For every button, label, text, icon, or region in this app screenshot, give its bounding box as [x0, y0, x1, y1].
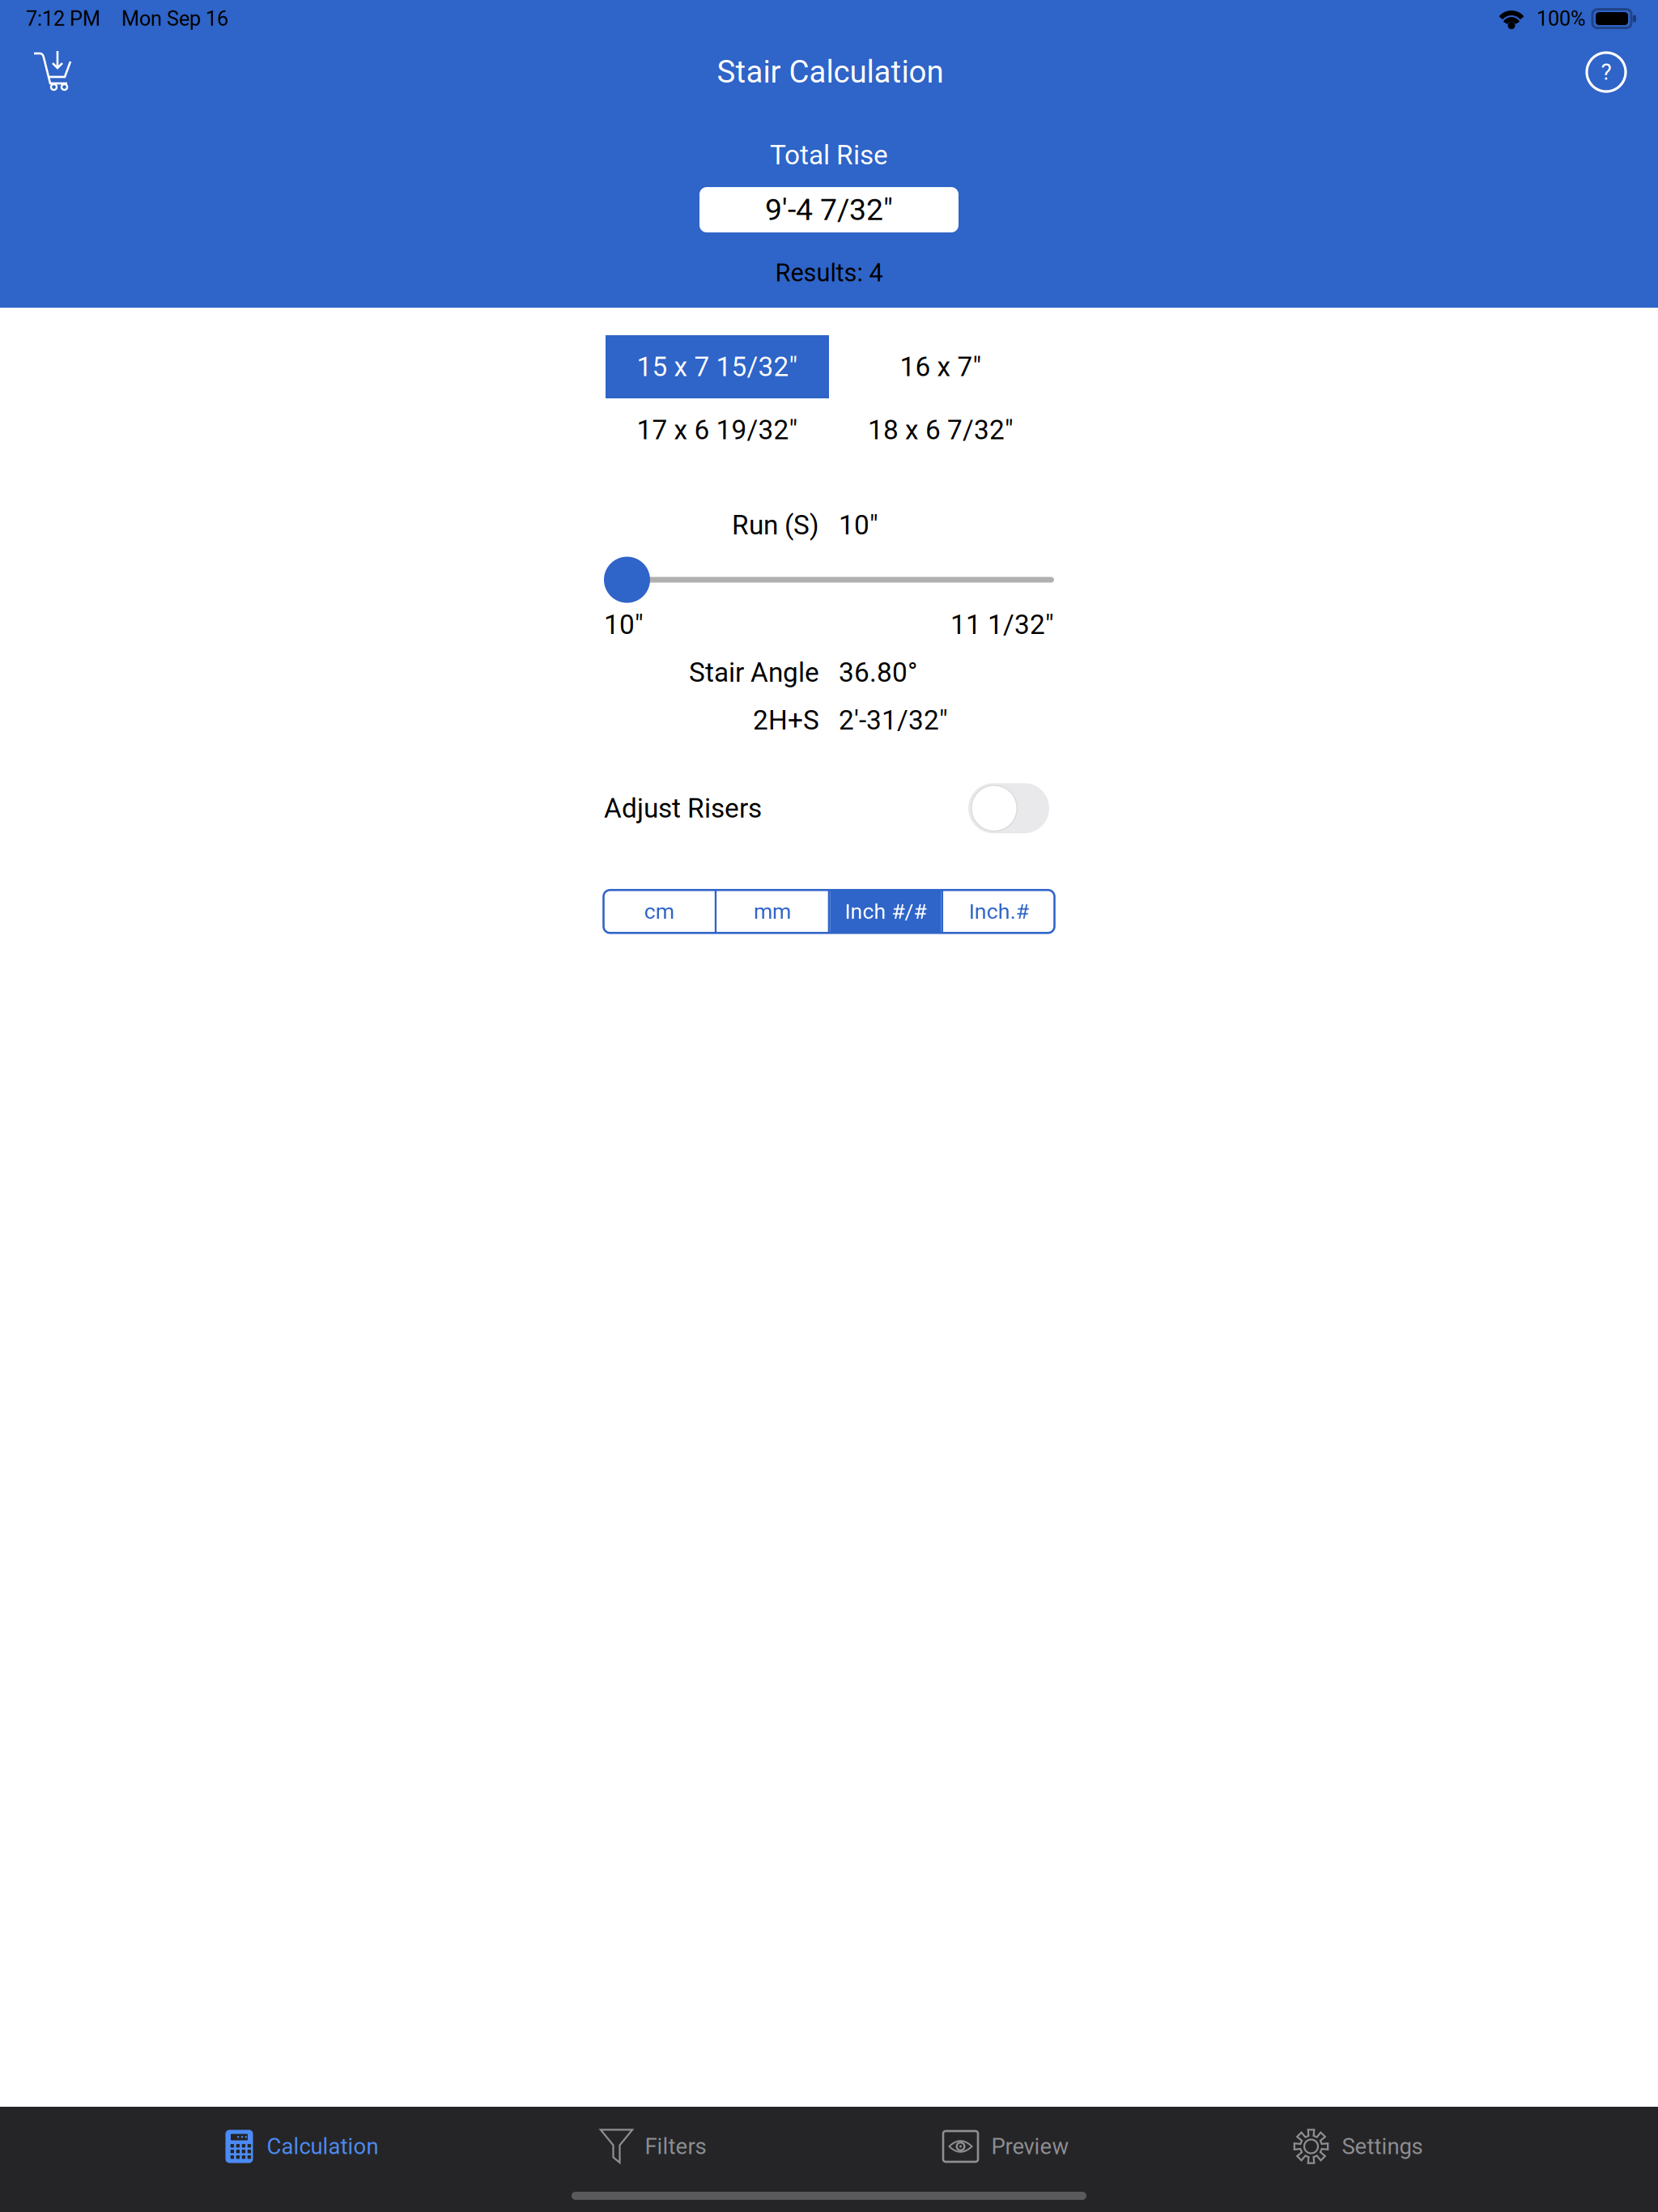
button[interactable]: Inch #/#	[830, 890, 941, 933]
staticText: 9'-4 7/32"	[765, 192, 893, 227]
staticText: Stair Calculation	[717, 54, 944, 90]
staticText: 18 x 6 7/32"	[868, 414, 1014, 446]
button[interactable]: 9'-4 7/32"	[699, 187, 959, 232]
staticText: Adjust Risers	[604, 792, 762, 824]
staticText: 15 x 7 15/32"	[637, 351, 798, 383]
staticText: cm	[644, 899, 674, 924]
button[interactable]: Inch.#	[943, 890, 1054, 933]
button[interactable]: Saved calculations	[2, 37, 105, 107]
staticText: ?	[1601, 59, 1611, 85]
button[interactable]: Preview	[829, 2107, 1181, 2186]
staticText: 16 x 7"	[900, 351, 982, 383]
staticText: 17 x 6 19/32"	[637, 414, 798, 446]
staticText: 11 1/32"	[950, 609, 1054, 641]
button[interactable]: 18 x 6 7/32"	[829, 398, 1052, 462]
staticText: Filters	[645, 2133, 706, 2159]
staticText: Results: 4	[775, 258, 883, 287]
button[interactable]: Calculation	[125, 2107, 477, 2186]
button[interactable]: mm	[717, 890, 828, 933]
button[interactable]: Help	[1555, 37, 1657, 107]
staticText: 100%	[1537, 7, 1586, 31]
button[interactable]: Settings	[1181, 2107, 1533, 2186]
staticText: 10"	[604, 609, 644, 641]
button[interactable]: cm	[604, 890, 715, 933]
staticText: Preview	[991, 2133, 1069, 2159]
staticText: Run (S)	[732, 509, 819, 541]
button[interactable]: 16 x 7"	[829, 335, 1052, 398]
button[interactable]: 17 x 6 19/32"	[606, 398, 829, 462]
staticText: 2'-31/32"	[839, 705, 948, 736]
staticText: Stair Angle	[689, 657, 819, 688]
staticText: Inch #/#	[845, 899, 927, 924]
button[interactable]: Filters	[477, 2107, 829, 2186]
staticText: Total Rise	[770, 139, 888, 171]
staticText: Mon Sep 16	[121, 7, 228, 31]
staticText: 7:12 PM	[26, 7, 100, 31]
staticText: mm	[754, 899, 791, 924]
button[interactable]: Adjust Risers, off	[968, 783, 1049, 833]
staticText: 36.80°	[839, 657, 917, 688]
button[interactable]: 15 x 7 15/32"	[606, 335, 829, 398]
staticText: 2H+S	[753, 705, 819, 736]
staticText: Inch.#	[969, 899, 1029, 924]
staticText: 10"	[839, 509, 878, 541]
staticText: Calculation	[267, 2133, 378, 2159]
staticText: Settings	[1342, 2133, 1423, 2159]
